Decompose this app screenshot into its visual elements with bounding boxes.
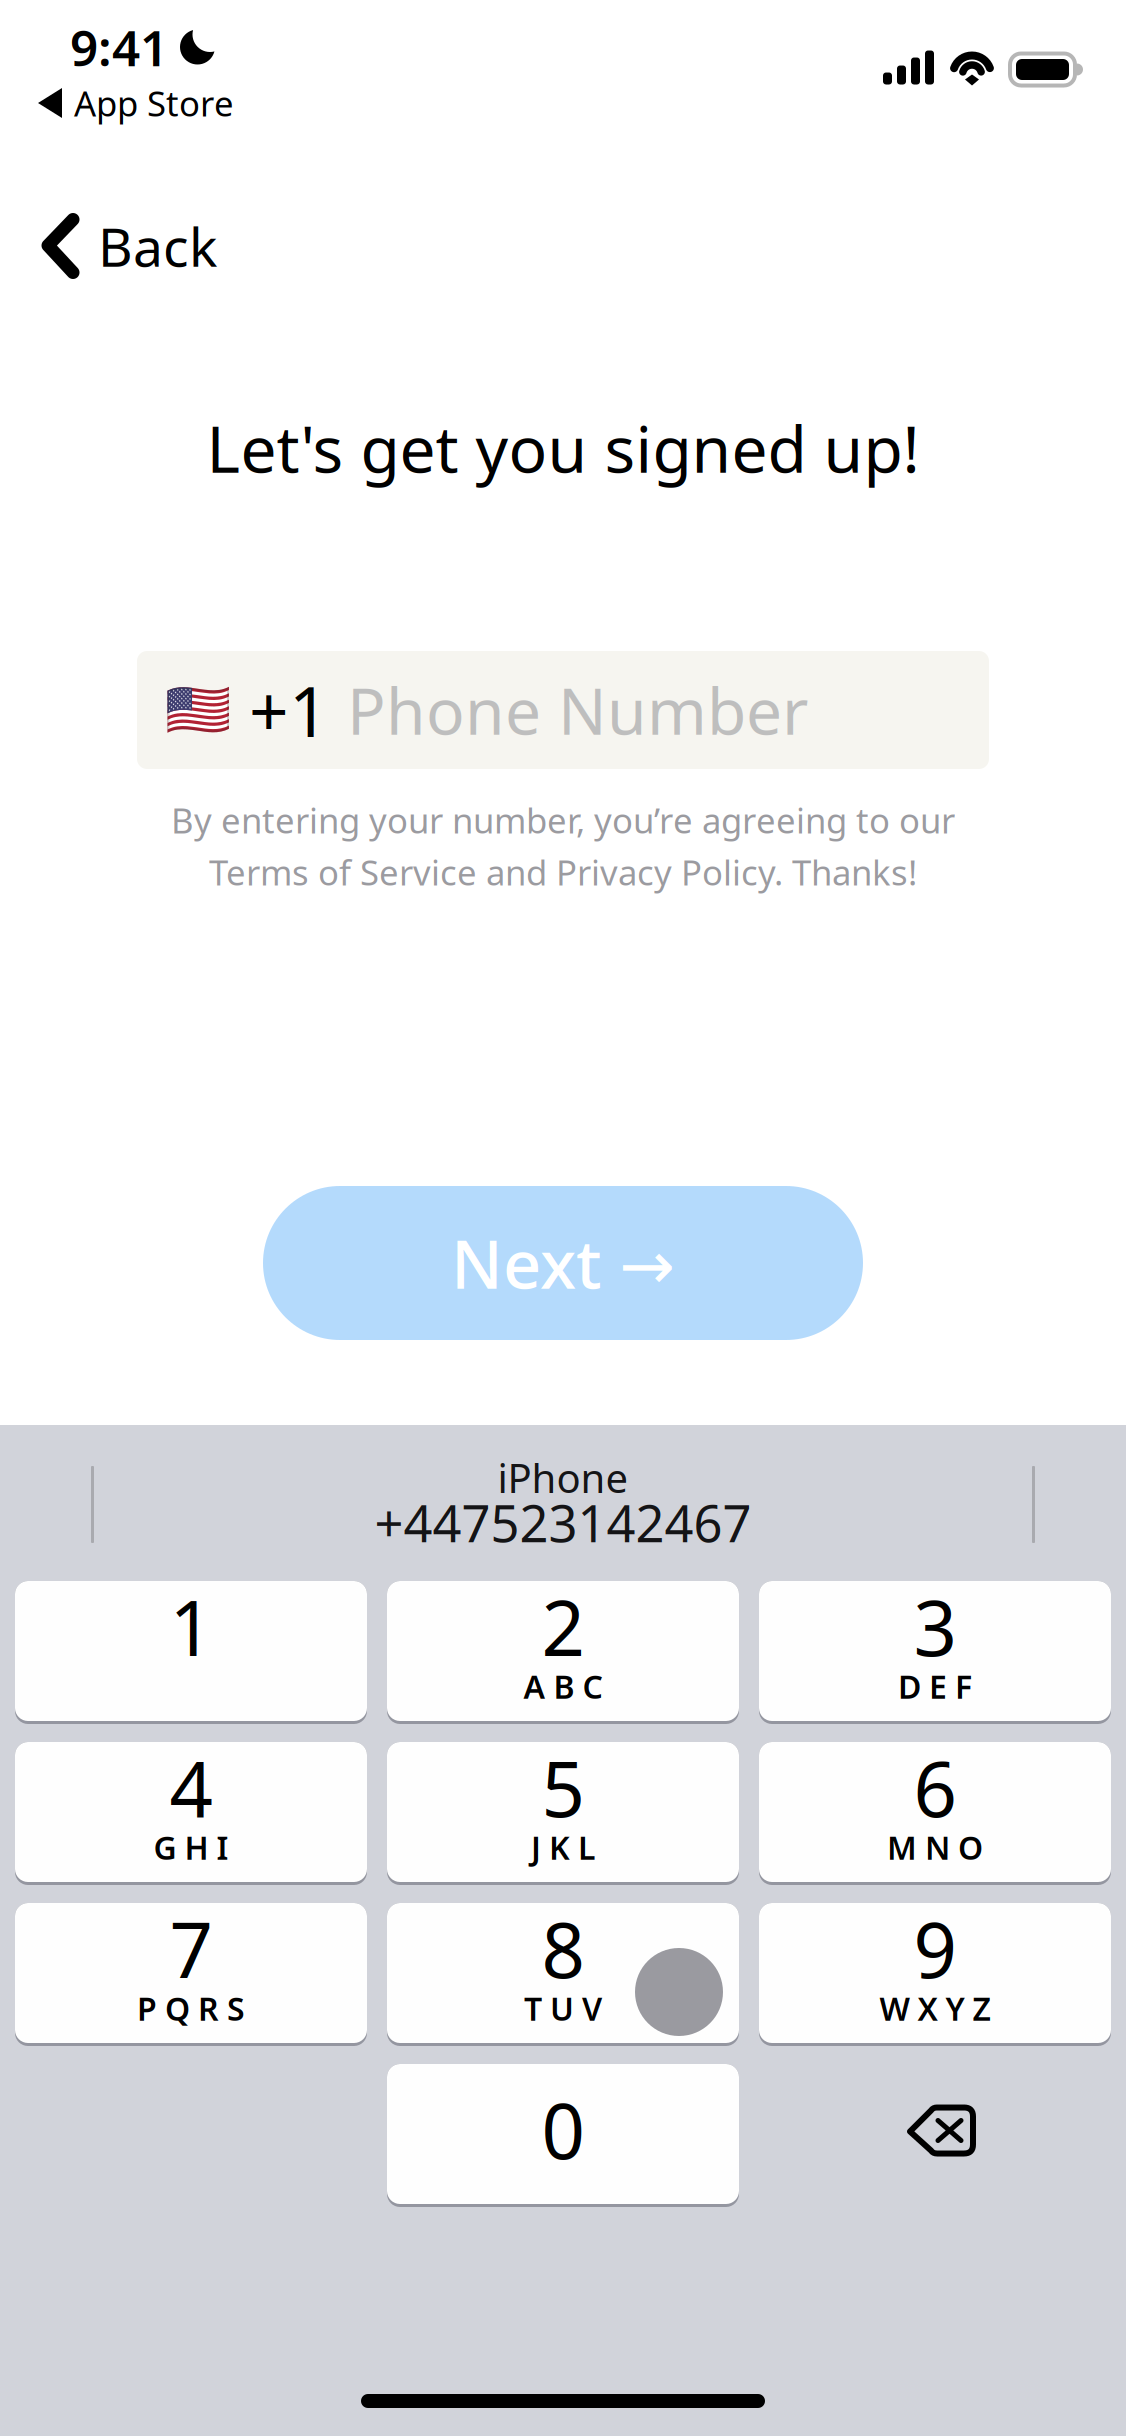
- button[interactable]: 4: [15, 1742, 367, 1885]
- button[interactable]: 🇺🇸: [137, 651, 989, 769]
- staticText: +1: [231, 664, 347, 756]
- staticText: 🇺🇸: [165, 679, 231, 740]
- button[interactable]: 7: [15, 1903, 367, 2046]
- staticText: Phone Number: [347, 667, 808, 752]
- button[interactable]: Next →: [263, 1186, 863, 1340]
- staticText: 7: [169, 1898, 212, 1999]
- button[interactable]: 1: [15, 1581, 367, 1724]
- staticText: 9:41: [70, 14, 168, 80]
- staticText: D E F: [898, 1665, 972, 1707]
- staticText: 5: [541, 1737, 584, 1838]
- staticText: 9: [913, 1898, 956, 1999]
- button[interactable]: 5: [387, 1742, 739, 1885]
- staticText: 2: [541, 1576, 584, 1677]
- button[interactable]: Back: [0, 196, 1126, 296]
- staticText: Let's get you signed up!: [206, 405, 919, 490]
- staticText: W X Y Z: [879, 1987, 990, 2029]
- button[interactable]: App Store: [0, 78, 1126, 128]
- staticText: 6: [913, 1737, 956, 1838]
- button[interactable]: 3: [759, 1581, 1111, 1724]
- staticText: J K L: [531, 1826, 595, 1868]
- staticText: iPhone: [497, 1451, 628, 1504]
- staticText: Next →: [451, 1219, 675, 1307]
- staticText: P Q R S: [137, 1987, 245, 2029]
- staticText: 0: [541, 2079, 584, 2180]
- staticText: App Store: [74, 80, 234, 126]
- button[interactable]: Delete: [759, 2064, 1111, 2207]
- staticText: +447523142467: [374, 1489, 751, 1556]
- button[interactable]: 0: [387, 2064, 739, 2207]
- staticText: 8: [541, 1898, 584, 1999]
- button[interactable]: 9: [759, 1903, 1111, 2046]
- staticText: Terms of Service and Privacy Policy. Tha…: [209, 849, 917, 895]
- staticText: Back: [98, 211, 217, 281]
- button[interactable]: 2: [387, 1581, 739, 1724]
- staticText: M N O: [887, 1826, 983, 1868]
- staticText: T U V: [524, 1987, 602, 2029]
- button[interactable]: 6: [759, 1742, 1111, 1885]
- button[interactable]: 8: [387, 1903, 739, 2046]
- staticText: By entering your number, you’re agreeing…: [171, 797, 955, 843]
- staticText: A B C: [523, 1665, 602, 1707]
- staticText: 1: [169, 1576, 212, 1677]
- staticText: G H I: [153, 1826, 228, 1868]
- staticText: 4: [169, 1737, 212, 1838]
- staticText: 3: [913, 1576, 956, 1677]
